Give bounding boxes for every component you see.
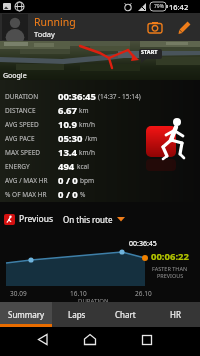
- button[interactable]: Chart: [101, 302, 150, 327]
- button[interactable]: Previous: [0, 210, 200, 228]
- staticText: Running: [34, 15, 76, 29]
- staticText: 13.4: [58, 146, 77, 159]
- staticText: Today: [34, 29, 55, 39]
- staticText: DISTANCE: [5, 106, 58, 115]
- button[interactable]: [78, 327, 102, 356]
- staticText: km/h: [79, 120, 95, 129]
- staticText: Google: [3, 71, 27, 81]
- staticText: 0 / 0: [58, 188, 78, 201]
- button[interactable]: Summary: [0, 302, 52, 327]
- staticText: 00:36:45: [58, 90, 96, 103]
- staticText: (14:37 - 15:14): [98, 92, 141, 101]
- staticText: km: [79, 106, 89, 115]
- staticText: PREVIOUS: [157, 272, 184, 279]
- staticText: 10.9: [58, 118, 77, 131]
- staticText: 30.09: [10, 289, 27, 298]
- staticText: On this route: [63, 214, 113, 225]
- button[interactable]: HR: [150, 302, 200, 327]
- staticText: DURATION: [5, 92, 58, 101]
- staticText: FASTER THAN: [152, 265, 188, 272]
- staticText: 16.10: [70, 289, 87, 298]
- staticText: DURATION: [78, 297, 109, 305]
- staticText: bpm: [80, 176, 95, 185]
- staticText: km/h: [79, 148, 95, 157]
- staticText: ENERGY: [5, 162, 58, 171]
- staticText: Laps: [68, 309, 86, 320]
- staticText: %: [80, 190, 86, 199]
- staticText: Previous: [19, 213, 54, 225]
- staticText: % OF MAX HR: [5, 190, 58, 199]
- staticText: 0 / 0: [58, 174, 78, 187]
- staticText: MAX SPEED: [5, 148, 58, 157]
- button[interactable]: [30, 327, 54, 356]
- staticText: 00:06:22: [151, 250, 189, 263]
- staticText: HR: [170, 309, 181, 320]
- staticText: AVG / MAX HR: [5, 176, 58, 185]
- staticText: 494: [58, 160, 75, 173]
- staticText: 6.67: [58, 104, 77, 117]
- staticText: kcal: [77, 162, 89, 171]
- staticText: 16:42: [169, 2, 189, 12]
- staticText: START: [141, 48, 158, 55]
- button[interactable]: Running: [34, 15, 143, 39]
- button[interactable]: [143, 15, 167, 39]
- staticText: 79%: [154, 3, 164, 10]
- staticText: AVG SPEED: [5, 120, 58, 129]
- button[interactable]: [135, 327, 159, 356]
- button[interactable]: Laps: [52, 302, 101, 327]
- staticText: AVG PACE: [5, 134, 58, 143]
- button[interactable]: [172, 15, 196, 39]
- staticText: 00:36:45: [129, 239, 157, 249]
- staticText: /km: [85, 134, 97, 143]
- staticText: Summary: [8, 309, 45, 320]
- button[interactable]: START: [0, 41, 200, 80]
- staticText: Chart: [115, 309, 136, 320]
- staticText: 05:30: [58, 132, 83, 145]
- staticText: 26.10: [135, 289, 152, 298]
